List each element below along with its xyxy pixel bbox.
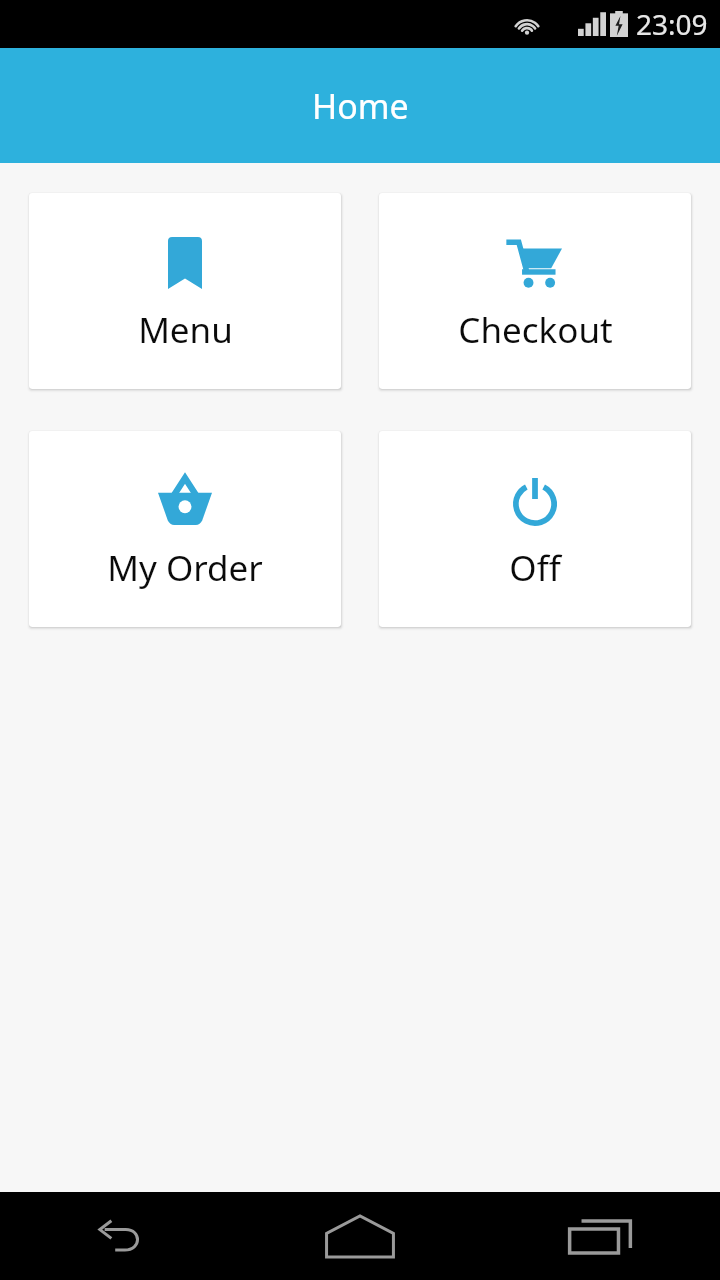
- other: Off: [510, 476, 560, 526]
- button[interactable]: Checkout: [379, 193, 691, 389]
- staticText: Menu: [138, 306, 233, 354]
- button[interactable]: Home: [240, 1192, 480, 1280]
- other: Checkout: [508, 237, 562, 289]
- staticText: My Order: [107, 544, 263, 592]
- other: My Order: [158, 477, 212, 525]
- button[interactable]: Back: [0, 1192, 240, 1280]
- button[interactable]: Menu: [29, 193, 341, 389]
- other: Menu: [168, 237, 202, 289]
- staticText: Home: [312, 83, 409, 129]
- button[interactable]: My Order: [29, 431, 341, 627]
- button[interactable]: Recent apps: [480, 1192, 720, 1280]
- button[interactable]: Off: [379, 431, 691, 627]
- staticText: Checkout: [458, 306, 613, 354]
- staticText: Off: [509, 544, 561, 592]
- staticText: 23:09: [636, 5, 708, 43]
